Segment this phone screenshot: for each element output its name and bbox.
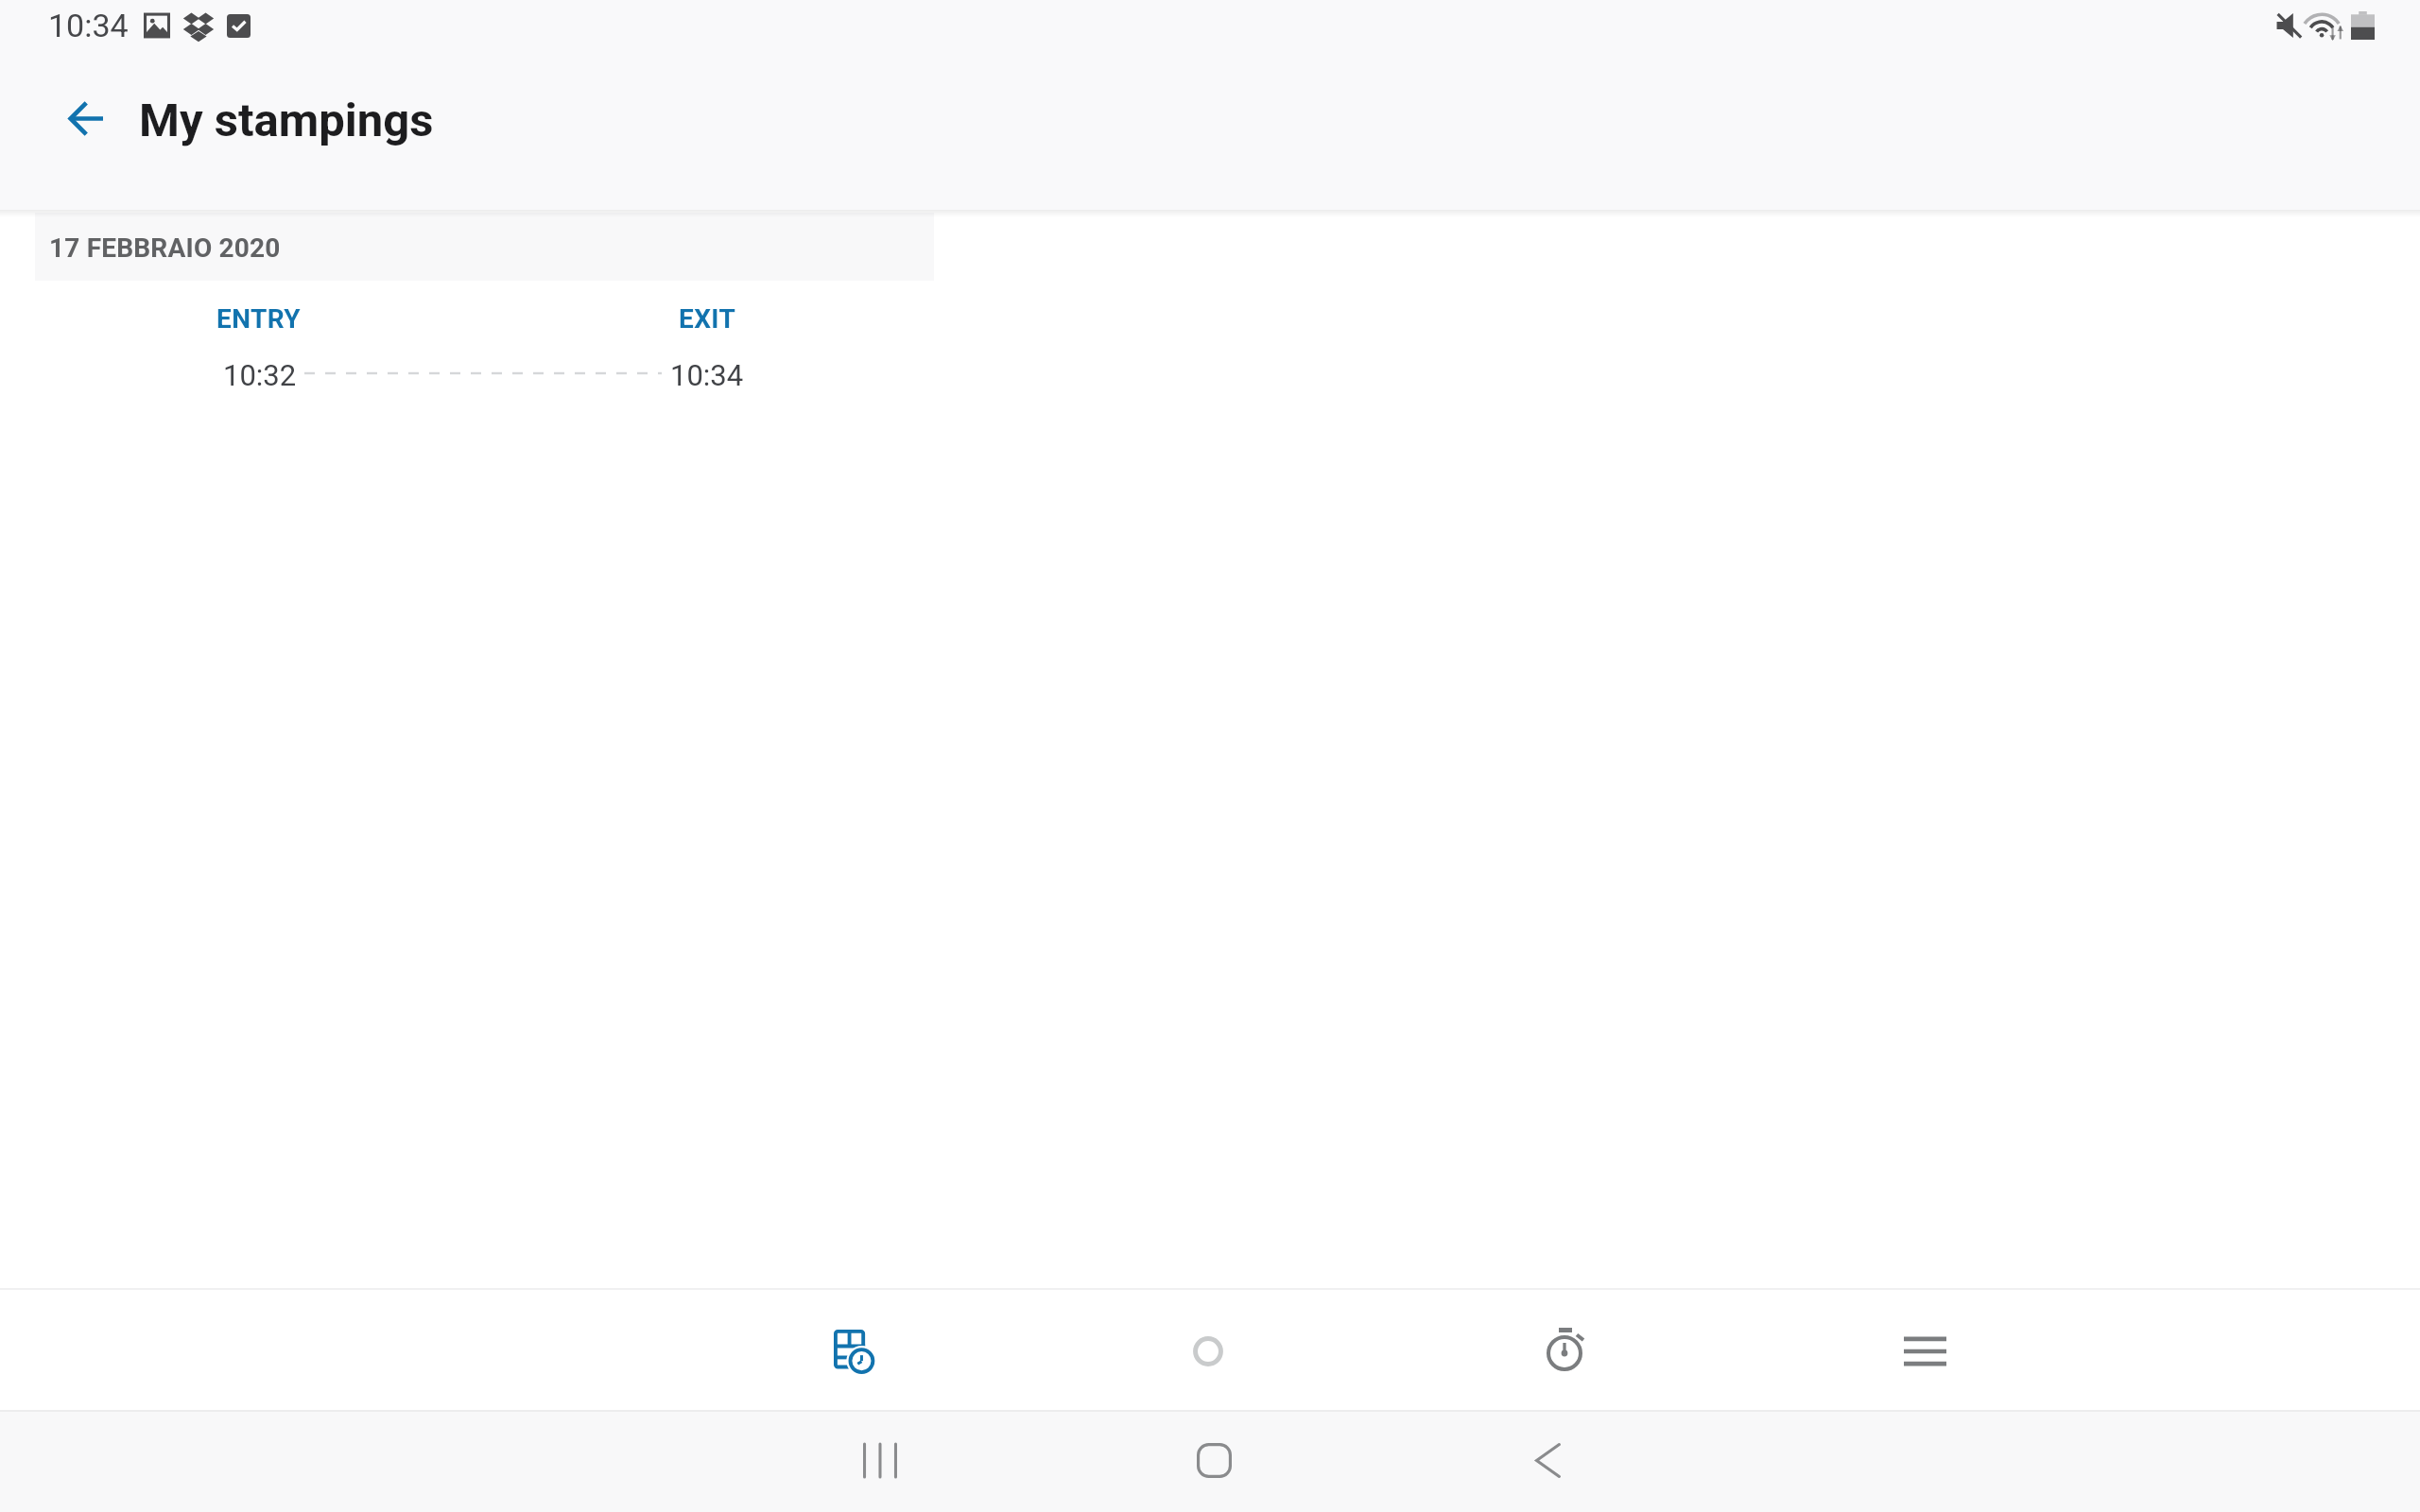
staticText: 10:34 — [670, 358, 744, 392]
staticText: 17 FEBBRAIO 2020 — [49, 232, 281, 264]
staticText: EXIT — [679, 303, 736, 335]
staticText: 10:32 — [223, 358, 297, 392]
button[interactable]: Back — [42, 91, 129, 178]
button[interactable]: ENTRY — [0, 283, 2420, 401]
button[interactable]: Back — [1481, 1410, 1614, 1512]
button[interactable]: Status — [1121, 1288, 1295, 1410]
button[interactable]: Home — [1148, 1410, 1280, 1512]
button[interactable]: Recents — [814, 1410, 946, 1512]
staticText: 10:34 — [48, 7, 129, 44]
button[interactable]: Stampings — [769, 1288, 942, 1410]
button[interactable]: Timer — [1479, 1288, 1653, 1410]
button[interactable]: Menu — [1838, 1288, 2012, 1410]
staticText: ENTRY — [216, 303, 302, 335]
staticText: My stampings — [139, 94, 434, 147]
